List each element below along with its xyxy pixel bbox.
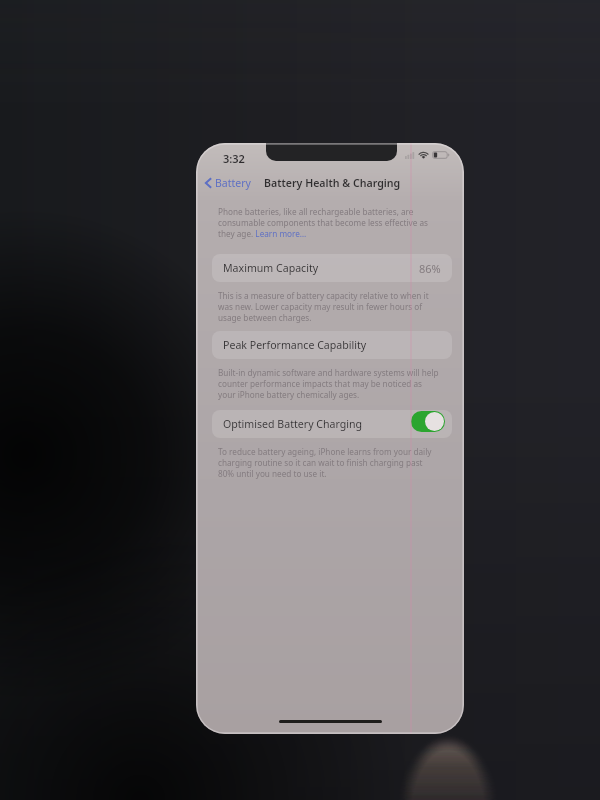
staticText: 3:32 (223, 151, 245, 166)
button[interactable]: Peak Performance Capability (212, 331, 452, 359)
staticText: Phone batteries, like all rechargeable b… (218, 206, 440, 239)
button[interactable]: Optimised Battery Charging (212, 410, 452, 438)
staticText: To reduce battery ageing, iPhone learns … (218, 446, 440, 479)
staticText: 86% (419, 261, 441, 276)
staticText: Peak Performance Capability (223, 338, 367, 352)
staticText: Battery (215, 176, 251, 190)
staticText: This is a measure of battery capacity re… (218, 290, 440, 323)
button[interactable]: Phone batteries, like all rechargeable b… (218, 206, 440, 239)
button[interactable]: Maximum Capacity (212, 254, 452, 282)
staticText: Optimised Battery Charging (223, 417, 363, 431)
staticText: Battery Health & Charging (264, 176, 401, 190)
button[interactable]: Battery (196, 174, 255, 192)
staticText: Maximum Capacity (223, 261, 319, 275)
button[interactable]: Optimised Battery Charging toggle (411, 411, 445, 432)
staticText: Built-in dynamic software and hardware s… (218, 367, 440, 400)
